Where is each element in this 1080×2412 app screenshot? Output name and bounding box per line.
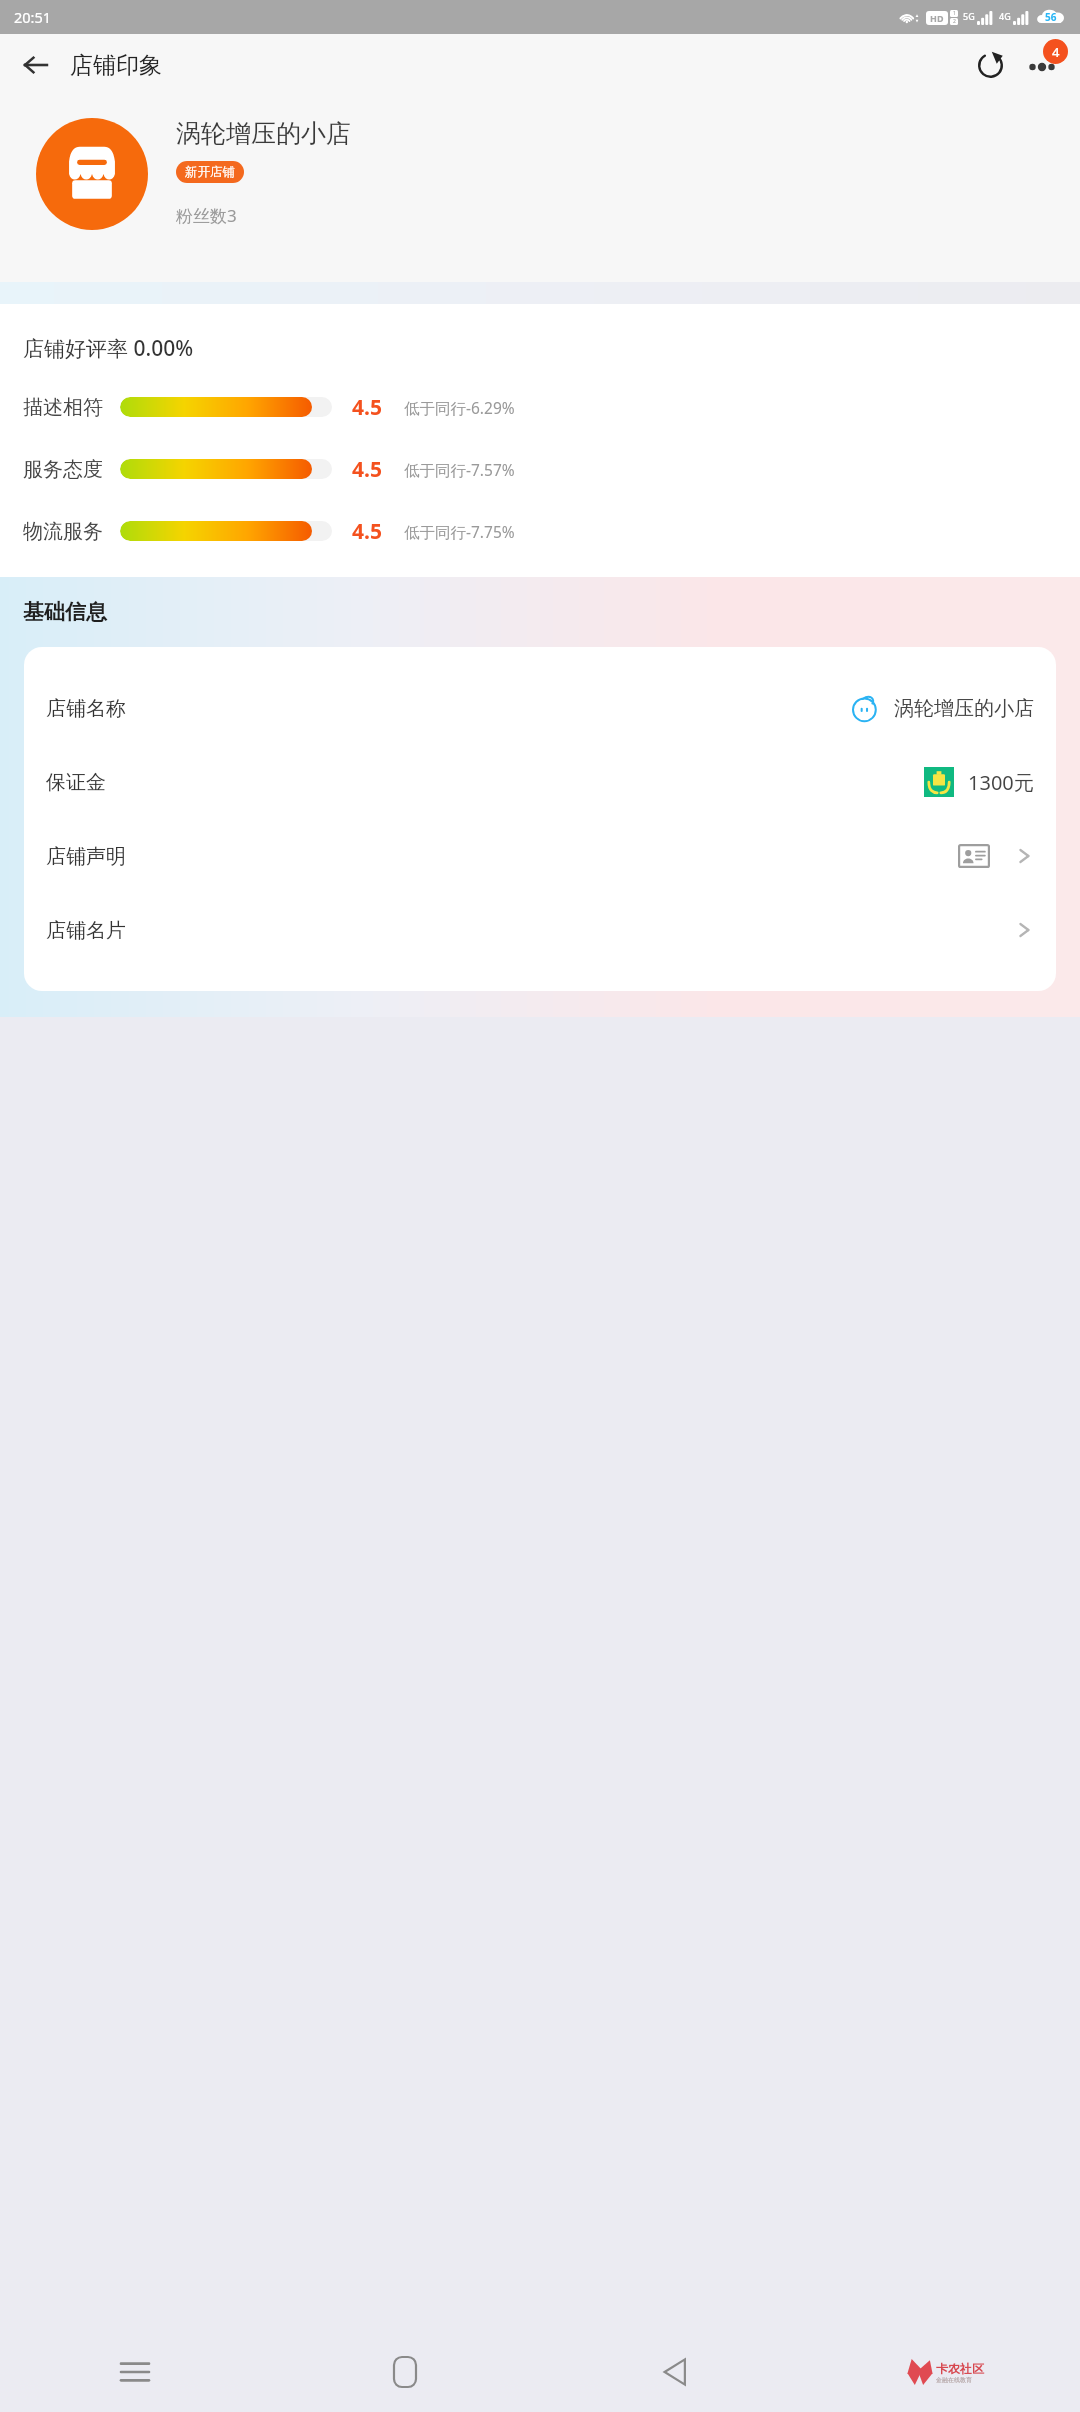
staticText: 4.5 [352, 517, 394, 546]
button[interactable]: More options, 4 notifications [1014, 37, 1070, 93]
staticText: 涡轮增压的小店 [176, 118, 351, 149]
staticText: 1300元 [968, 769, 1034, 796]
button[interactable]: Home [270, 2332, 540, 2412]
staticText: 基础信息 [23, 599, 107, 625]
staticText: 服务态度 [23, 457, 103, 482]
staticText: 店铺名称 [46, 696, 126, 721]
staticText: 低于同行-6.29% [404, 397, 515, 418]
staticText: 2 [953, 18, 956, 25]
button[interactable]: 保证金 [46, 745, 1034, 819]
staticText: 保证金 [46, 770, 106, 795]
staticText: 20:51 [14, 7, 52, 27]
staticText: 1 [953, 10, 956, 17]
button[interactable]: 店铺名片 [46, 893, 1034, 967]
staticText: 物流服务 [23, 519, 103, 544]
staticText: 店铺名片 [46, 918, 126, 943]
staticText: HD [930, 12, 944, 24]
button[interactable]: Recent apps [0, 2332, 270, 2412]
staticText: 粉丝数3 [176, 204, 237, 227]
button[interactable]: Shop avatar [36, 118, 148, 230]
staticText: 低于同行-7.75% [404, 521, 515, 542]
button[interactable]: Back [540, 2332, 810, 2412]
staticText: 店铺声明 [46, 844, 126, 869]
staticText: 店铺好评率 0.00% [23, 334, 194, 363]
staticText: 新开店铺 [185, 164, 235, 180]
staticText: 4G [999, 10, 1011, 22]
staticText: 5G [963, 10, 975, 22]
button[interactable]: Back [14, 43, 58, 87]
staticText: 涡轮增压的小店 [894, 696, 1034, 721]
staticText: 卡农社区 [936, 2361, 984, 2376]
staticText: 金融在线教育 [936, 2376, 972, 2384]
staticText: 描述相符 [23, 395, 103, 420]
button[interactable]: 店铺声明 [46, 819, 1034, 893]
staticText: 4.5 [352, 455, 394, 484]
button[interactable]: 店铺名称 [46, 671, 1034, 745]
button[interactable]: Refresh [966, 41, 1014, 89]
staticText: 4 [1052, 43, 1060, 61]
staticText: 低于同行-7.57% [404, 459, 515, 480]
staticText: 4.5 [352, 393, 394, 422]
staticText: 店铺印象 [70, 51, 162, 80]
staticText: 56 [1045, 10, 1057, 24]
